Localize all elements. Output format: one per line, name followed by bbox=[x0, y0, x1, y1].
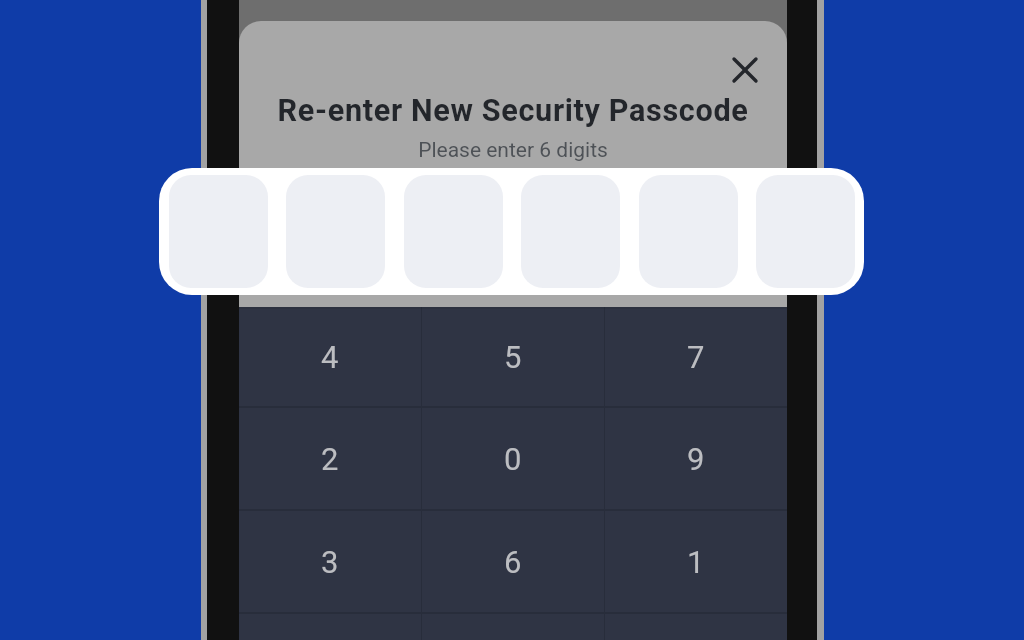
staticText: 2 bbox=[321, 441, 339, 477]
staticText: 5 bbox=[504, 339, 522, 375]
button[interactable] bbox=[404, 175, 503, 288]
staticText: 1 bbox=[687, 544, 705, 580]
button[interactable] bbox=[639, 175, 738, 288]
button[interactable]: 2 bbox=[239, 408, 421, 509]
button[interactable]: 9 bbox=[605, 408, 787, 509]
button[interactable] bbox=[756, 175, 855, 288]
staticText: 7 bbox=[687, 339, 705, 375]
button[interactable]: Close bbox=[722, 47, 767, 92]
button[interactable] bbox=[521, 175, 620, 288]
staticText: Please enter 6 digits bbox=[239, 138, 787, 163]
button[interactable]: 7 bbox=[605, 307, 787, 406]
staticText: 9 bbox=[687, 441, 705, 477]
button[interactable] bbox=[286, 175, 385, 288]
button[interactable]: 0 bbox=[422, 408, 604, 509]
staticText: 4 bbox=[321, 339, 339, 375]
staticText: 6 bbox=[504, 544, 522, 580]
button[interactable]: 1 bbox=[605, 511, 787, 612]
button[interactable]: 6 bbox=[422, 511, 604, 612]
staticText: 0 bbox=[504, 441, 522, 477]
button[interactable]: 3 bbox=[239, 511, 421, 612]
staticText: 3 bbox=[321, 544, 339, 580]
button[interactable]: 4 bbox=[239, 307, 421, 406]
button[interactable]: 5 bbox=[422, 307, 604, 406]
button[interactable] bbox=[169, 175, 268, 288]
staticText: Re-enter New Security Passcode bbox=[239, 93, 787, 129]
